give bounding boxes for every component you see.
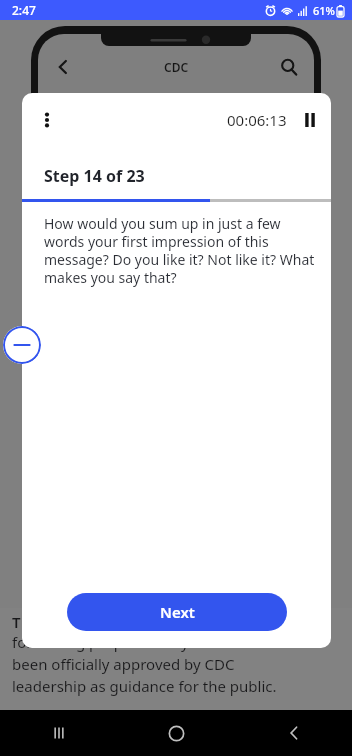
staticText: been officially approved by CDC [12, 654, 235, 674]
button[interactable]: More options [30, 103, 64, 137]
button[interactable]: Pause [299, 109, 321, 131]
staticText: 61% [313, 3, 335, 18]
button[interactable]: Back [46, 50, 80, 84]
button[interactable]: Recent apps [0, 710, 118, 756]
button[interactable]: Back [235, 710, 352, 756]
staticText: CDC [164, 59, 189, 75]
staticText: 2:47 [12, 2, 36, 18]
staticText: T [12, 612, 21, 632]
button[interactable]: Next [67, 593, 287, 631]
staticText: 00:06:13 [227, 110, 287, 130]
staticText: How would you sum up in just a few words… [44, 214, 315, 287]
button[interactable]: Collapse [3, 326, 41, 364]
staticText: Step 14 of 23 [44, 165, 145, 187]
button[interactable]: Search [272, 50, 306, 84]
staticText: for testing purposes only and have not [12, 632, 285, 652]
staticText: Next [160, 602, 195, 622]
button[interactable]: Home [118, 710, 235, 756]
staticText: leadership as guidance for the public. [12, 676, 277, 696]
